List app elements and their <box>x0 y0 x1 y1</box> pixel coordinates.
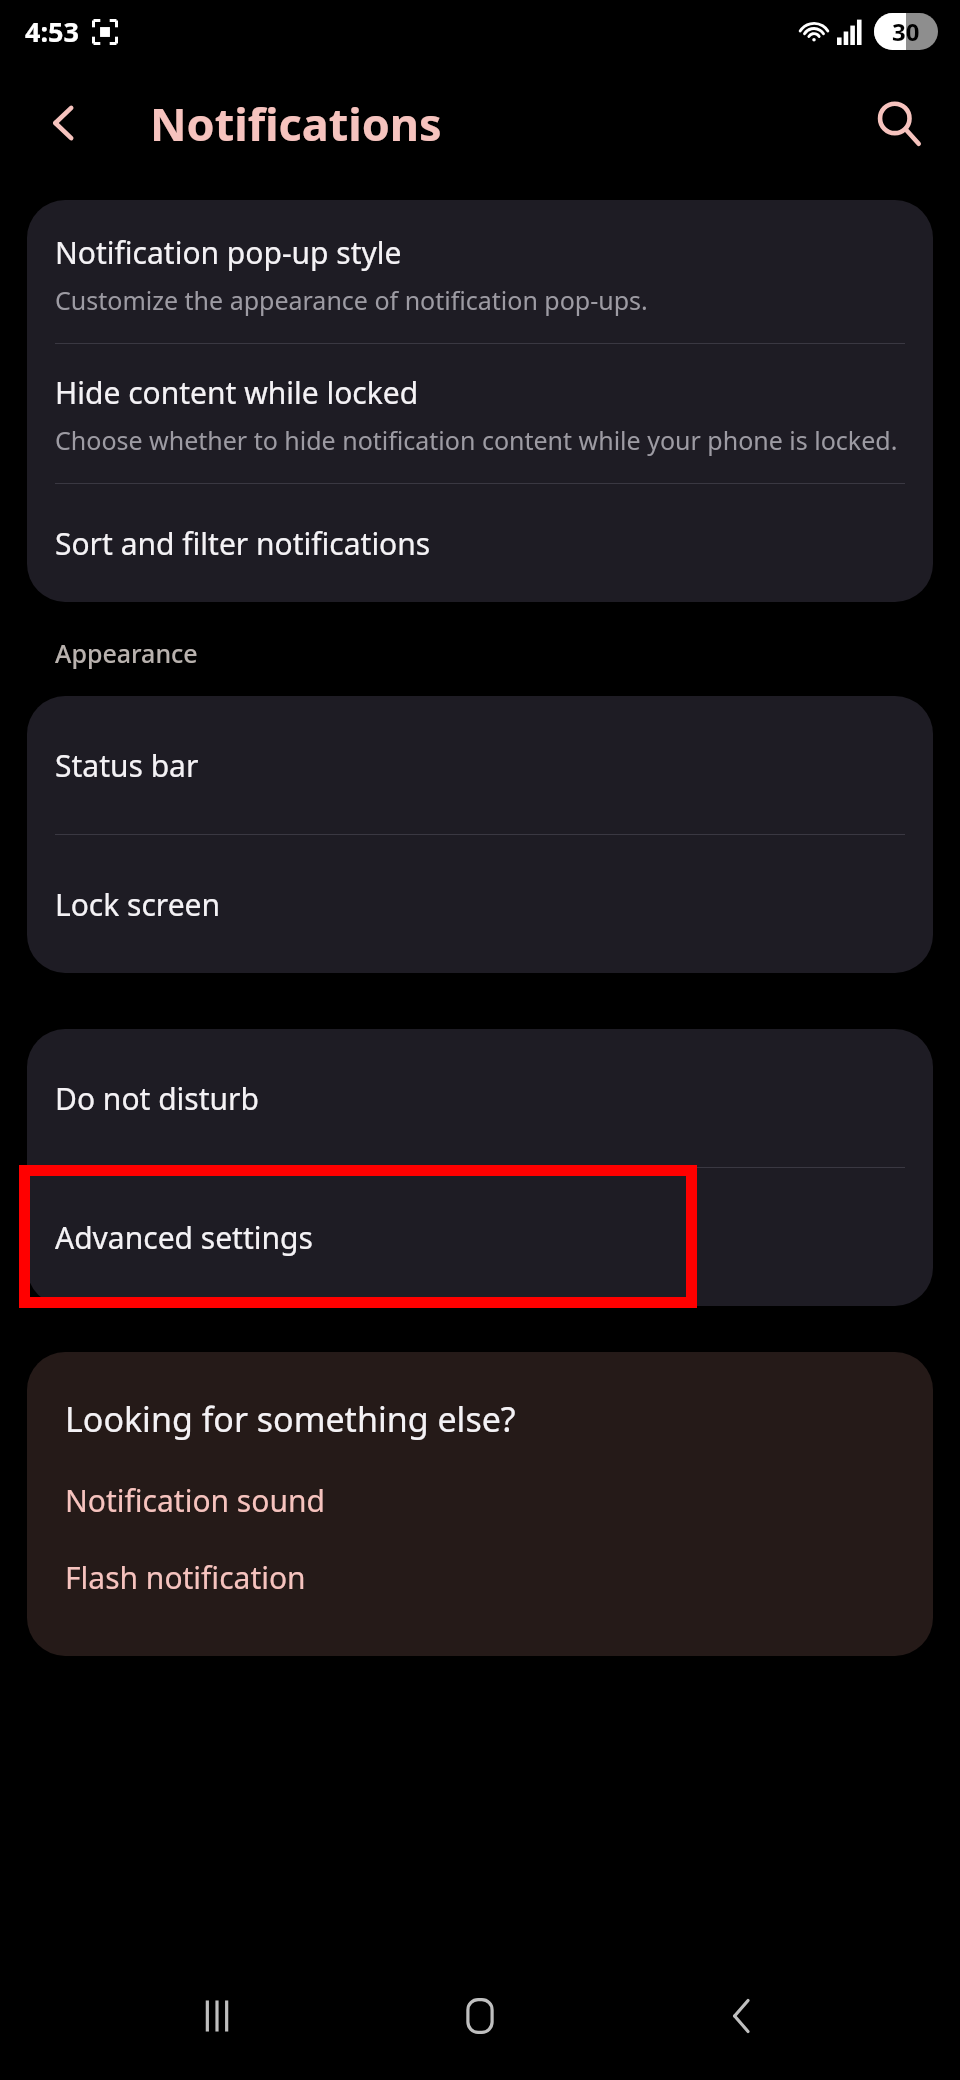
staticText: Status bar <box>55 745 199 786</box>
staticText: Customize the appearance of notification… <box>55 283 648 317</box>
staticText: Advanced settings <box>55 1217 313 1258</box>
staticText: Choose whether to hide notification cont… <box>55 423 898 457</box>
staticText: Notification pop-up style <box>55 232 402 273</box>
button[interactable]: Lock screen <box>27 835 933 973</box>
staticText: Sort and filter notifications <box>55 523 431 564</box>
staticText: Hide content while locked <box>55 372 419 413</box>
button[interactable]: Search <box>866 91 930 155</box>
staticText: Do not disturb <box>55 1078 259 1119</box>
staticText: Flash notification <box>65 1557 306 1598</box>
staticText: 4:53 <box>25 13 79 50</box>
staticText: Notifications <box>150 93 442 154</box>
button[interactable]: Hide content while locked <box>27 344 933 483</box>
button[interactable]: Back <box>34 93 94 153</box>
button[interactable]: Advanced settings <box>27 1168 933 1306</box>
button[interactable]: Notification pop-up style <box>27 200 933 343</box>
button[interactable]: Recents <box>171 1970 263 2062</box>
button[interactable]: Flash notification <box>65 1557 306 1598</box>
button[interactable]: Do not disturb <box>27 1029 933 1167</box>
button[interactable]: Notification sound <box>65 1480 325 1521</box>
staticText: Appearance <box>55 636 198 670</box>
staticText: Notification sound <box>65 1480 325 1521</box>
staticText: 30 <box>892 15 920 48</box>
staticText: Looking for something else? <box>65 1396 516 1442</box>
button[interactable]: Sort and filter notifications <box>27 484 933 602</box>
button[interactable]: Home <box>434 1970 526 2062</box>
staticText: Lock screen <box>55 884 221 925</box>
button[interactable]: Back <box>697 1970 789 2062</box>
button[interactable]: Status bar <box>27 696 933 834</box>
